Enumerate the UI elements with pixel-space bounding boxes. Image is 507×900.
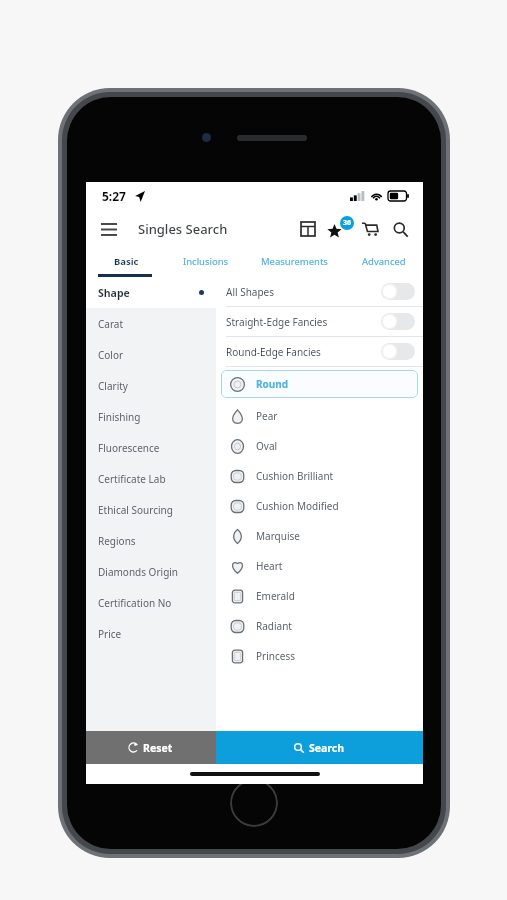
staticText: Cushion Modified xyxy=(256,499,339,513)
button[interactable]: Princess xyxy=(216,641,423,671)
button[interactable]: Basic xyxy=(86,248,166,274)
staticText: Round xyxy=(256,377,289,391)
button[interactable]: Fluorescence xyxy=(86,432,216,463)
staticText: Oval xyxy=(256,439,278,453)
staticText: Heart xyxy=(256,559,283,573)
staticText: Carat xyxy=(98,317,124,331)
staticText: Singles Search xyxy=(138,220,228,238)
button[interactable]: Diamonds Origin xyxy=(86,556,216,587)
staticText: Search xyxy=(309,741,345,755)
button[interactable]: Cushion Modified xyxy=(216,491,423,521)
button[interactable]: Certification No xyxy=(86,587,216,618)
button[interactable]: Carat xyxy=(86,308,216,339)
button[interactable]: Regions xyxy=(86,525,216,556)
button[interactable]: Marquise xyxy=(216,521,423,551)
staticText: Pear xyxy=(256,409,278,423)
button[interactable]: Search xyxy=(216,731,423,764)
button[interactable]: Ethical Sourcing xyxy=(86,494,216,525)
button[interactable]: Shape xyxy=(86,277,216,308)
staticText: Diamonds Origin xyxy=(98,565,179,579)
button[interactable]: Cart xyxy=(357,216,383,242)
staticText: Clarity xyxy=(98,379,128,393)
button[interactable]: Oval xyxy=(216,431,423,461)
staticText: Fluorescence xyxy=(98,441,160,455)
staticText: Shape xyxy=(98,286,130,300)
button[interactable]: Cushion Brilliant xyxy=(216,461,423,491)
button[interactable]: Menu xyxy=(94,214,124,244)
button[interactable]: Table view xyxy=(295,216,321,242)
staticText: Certificate Lab xyxy=(98,472,166,486)
button[interactable]: Finishing xyxy=(86,401,216,432)
staticText: Finishing xyxy=(98,410,141,424)
staticText: Price xyxy=(98,627,122,641)
button[interactable]: Pear xyxy=(216,401,423,431)
staticText: Inclusions xyxy=(183,255,229,268)
staticText: Straight-Edge Fancies xyxy=(226,315,328,329)
button[interactable]: Price xyxy=(86,618,216,649)
staticText: All Shapes xyxy=(226,285,275,299)
staticText: Certification No xyxy=(98,596,172,610)
staticText: 5:27 xyxy=(102,188,126,204)
staticText: Ethical Sourcing xyxy=(98,503,173,517)
button[interactable]: Round xyxy=(221,370,418,398)
staticText: Radiant xyxy=(256,619,292,633)
button[interactable]: Inclusions xyxy=(166,248,245,274)
button[interactable]: Round-Edge Fancies xyxy=(216,337,423,366)
staticText: Cushion Brilliant xyxy=(256,469,334,483)
button[interactable]: Search xyxy=(387,216,413,242)
button[interactable]: Measurements xyxy=(245,248,344,274)
button[interactable]: Emerald xyxy=(216,581,423,611)
staticText: Princess xyxy=(256,649,295,663)
staticText: Basic xyxy=(114,255,139,268)
button[interactable]: Advanced xyxy=(344,248,423,274)
staticText: 36 xyxy=(343,218,352,228)
button[interactable]: Straight-Edge Fancies xyxy=(216,307,423,336)
staticText: Reset xyxy=(143,741,173,755)
button[interactable]: Favourites, 36 items xyxy=(325,215,353,243)
staticText: Regions xyxy=(98,534,136,548)
staticText: Emerald xyxy=(256,589,295,603)
staticText: Marquise xyxy=(256,529,300,543)
staticText: Color xyxy=(98,348,124,362)
staticText: Advanced xyxy=(362,255,406,268)
button[interactable]: Certificate Lab xyxy=(86,463,216,494)
staticText: Measurements xyxy=(261,255,328,268)
staticText: Round-Edge Fancies xyxy=(226,345,321,359)
button[interactable]: Clarity xyxy=(86,370,216,401)
button[interactable]: All Shapes xyxy=(216,277,423,306)
button[interactable]: Color xyxy=(86,339,216,370)
button[interactable]: Reset xyxy=(86,731,216,764)
button[interactable]: Radiant xyxy=(216,611,423,641)
button[interactable]: Heart xyxy=(216,551,423,581)
